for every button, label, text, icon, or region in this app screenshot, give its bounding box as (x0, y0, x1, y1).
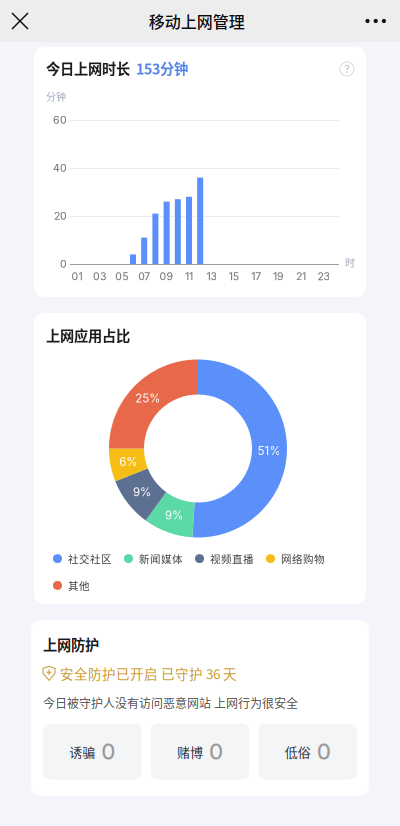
staticText: 19 (273, 270, 284, 283)
staticText: 0 (60, 258, 67, 270)
staticText: 6% (119, 455, 137, 469)
staticText: 9% (133, 485, 151, 499)
staticText: 0 (317, 738, 331, 765)
staticText: 安全防护已开启 已守护 36 天 (60, 664, 237, 683)
staticText: 视频直播 (210, 551, 254, 566)
staticText: 09 (160, 270, 174, 283)
staticText: 社交社区 (68, 551, 112, 566)
staticText: 移动上网管理 (149, 9, 245, 33)
staticText: 0 (209, 738, 223, 765)
staticText: 赌博 (177, 742, 203, 761)
staticText: 40 (53, 162, 67, 174)
staticText: 时 (345, 255, 355, 269)
staticText: 13 (206, 270, 216, 283)
staticText: 上网防护 (43, 634, 99, 655)
staticText: 25% (135, 391, 160, 405)
staticText: 03 (93, 270, 106, 283)
staticText: 17 (251, 270, 261, 283)
staticText: 20 (54, 210, 67, 222)
staticText: 60 (53, 114, 67, 126)
button[interactable]: 帮助 (340, 62, 354, 76)
staticText: 0 (101, 738, 115, 765)
button[interactable]: 更多 (349, 0, 400, 42)
staticText: 05 (115, 270, 128, 283)
staticText: 新闻媒体 (139, 551, 183, 566)
staticText: 诱骗 (69, 742, 95, 761)
staticText: 51% (257, 444, 280, 458)
staticText: 15 (229, 270, 239, 283)
staticText: 01 (71, 270, 82, 283)
staticText: 11 (185, 270, 193, 283)
staticText: ? (344, 63, 349, 75)
button[interactable]: 关闭 (0, 0, 44, 42)
staticText: 分钟 (46, 89, 66, 103)
staticText: 低俗 (285, 742, 311, 761)
staticText: 21 (296, 270, 306, 283)
staticText: 其他 (68, 578, 90, 593)
staticText: 23 (317, 270, 329, 283)
staticText: 153分钟 (130, 58, 188, 79)
staticText: 上网应用占比 (46, 325, 130, 346)
staticText: 今日上网时长 (46, 58, 130, 79)
staticText: 网络购物 (281, 551, 325, 566)
staticText: 今日被守护人没有访问恶意网站 上网行为很安全 (43, 694, 298, 711)
staticText: 9% (165, 508, 183, 522)
staticText: 07 (138, 270, 150, 283)
